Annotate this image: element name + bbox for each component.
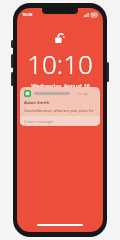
button[interactable]: 2 more messages [20,116,100,126]
staticText: Wednesday, August 18 [31,82,90,89]
staticText: 2 more messages [24,119,54,124]
button[interactable]: Unlocked [52,29,68,45]
staticText: 10:10 [22,12,33,17]
staticText: 10:10 [27,46,93,81]
staticText: 5m ago [77,92,89,96]
button[interactable]: 5m ago [20,87,100,126]
staticText: Good afternoon, what are your plans for … [24,108,96,113]
staticText: Adam Smith [24,100,50,106]
